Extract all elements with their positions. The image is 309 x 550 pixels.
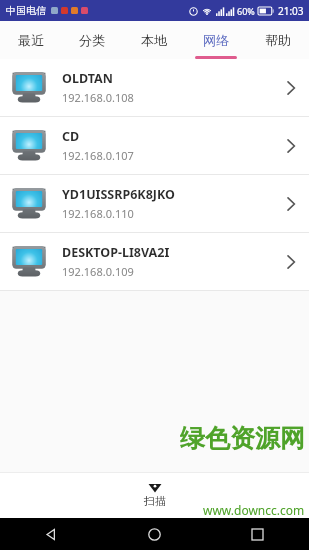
button[interactable]: CD — [0, 117, 309, 174]
button[interactable]: 扫描 — [130, 479, 180, 511]
staticText: 192.168.0.107 — [62, 148, 134, 163]
button[interactable]: 本地 — [123, 21, 185, 59]
other: Open — [285, 135, 297, 157]
button[interactable]: 帮助 — [247, 21, 309, 59]
staticText: www.downcc.com — [203, 502, 305, 518]
staticText: 60% — [237, 5, 255, 17]
staticText: OLDTAN — [62, 70, 113, 87]
staticText: 分类 — [79, 32, 105, 48]
staticText: 中国电信 — [6, 4, 46, 17]
button[interactable]: Back — [0, 518, 103, 550]
staticText: CD — [62, 128, 80, 145]
staticText: 帮助 — [265, 32, 291, 48]
staticText: 扫描 — [144, 494, 166, 508]
staticText: 192.168.0.109 — [62, 264, 134, 279]
button[interactable]: DESKTOP-LI8VA2I — [0, 233, 309, 290]
button[interactable]: 最近 — [0, 21, 61, 59]
button[interactable]: 分类 — [61, 21, 123, 59]
staticText: 网络 — [203, 32, 229, 48]
staticText: 192.168.0.110 — [62, 206, 134, 221]
staticText: 本地 — [141, 32, 167, 48]
staticText: 最近 — [18, 32, 44, 48]
other: Open — [285, 77, 297, 99]
other: Open — [285, 193, 297, 215]
staticText: 绿色资源网 — [180, 423, 305, 454]
button[interactable]: Home — [103, 518, 206, 550]
button[interactable]: Recents — [206, 518, 309, 550]
button[interactable]: 网络 — [185, 21, 247, 59]
staticText: 192.168.0.108 — [62, 90, 134, 105]
staticText: 21:03 — [278, 4, 304, 18]
button[interactable]: OLDTAN — [0, 59, 309, 116]
other: Open — [285, 251, 297, 273]
staticText: DESKTOP-LI8VA2I — [62, 244, 170, 261]
staticText: YD1UISSRP6K8JKO — [62, 186, 175, 203]
button[interactable]: YD1UISSRP6K8JKO — [0, 175, 309, 232]
